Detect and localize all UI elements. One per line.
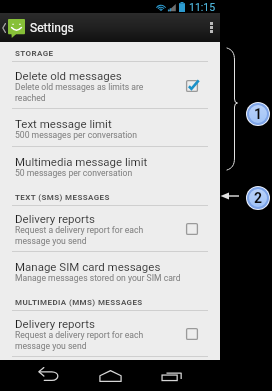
staticText: TEXT (SMS) MESSAGES (15, 193, 110, 202)
button[interactable]: Delete old messages (0, 62, 220, 109)
staticText: Manage messages stored on your SIM card (15, 273, 181, 283)
button[interactable]: Text message limit (0, 109, 220, 147)
staticText: STORAGE (15, 49, 54, 58)
staticText: Request a delivery report for each messa… (15, 330, 165, 351)
button[interactable]: Navigate up (0, 13, 220, 42)
staticText: 11:15 (189, 1, 216, 13)
staticText: Delivery reports (15, 212, 95, 225)
button[interactable]: Toggle setting (185, 222, 199, 236)
button[interactable]: Recent apps (156, 365, 187, 386)
button[interactable]: Multimedia message limit (0, 147, 220, 186)
button[interactable]: More options (202, 13, 220, 42)
button[interactable]: Back (33, 365, 64, 386)
button[interactable]: Manage SIM card messages (0, 252, 220, 291)
button[interactable]: Delivery reports (0, 311, 220, 357)
staticText: 2 (254, 190, 263, 206)
button[interactable]: Callout 2 (247, 187, 269, 209)
staticText: Manage SIM card messages (15, 260, 161, 273)
staticText: Multimedia message limit (15, 155, 148, 168)
staticText: Delete old messages as limits are reache… (15, 82, 165, 103)
staticText: Delete old messages (15, 69, 122, 82)
staticText: Text message limit (15, 117, 112, 130)
button[interactable]: Callout 1 (247, 103, 269, 125)
staticText: 1 (254, 106, 263, 122)
button[interactable]: Delivery reports (0, 206, 220, 252)
staticText: Settings (30, 21, 74, 35)
button[interactable]: Toggle setting (185, 79, 199, 93)
button[interactable]: Home (95, 365, 126, 386)
staticText: Delivery reports (15, 317, 95, 330)
staticText: Request a delivery report for each messa… (15, 225, 165, 246)
staticText: MULTIMEDIA (MMS) MESSAGES (15, 298, 143, 307)
staticText: 50 messages per conversation (15, 168, 133, 178)
staticText: 500 messages per conversation (15, 130, 138, 140)
button[interactable]: Toggle setting (185, 327, 199, 341)
